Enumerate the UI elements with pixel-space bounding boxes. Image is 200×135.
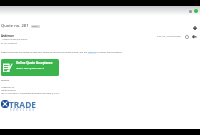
staticText: 3:49 AM (1 minute ago) [157, 35, 181, 38]
staticText: Quote no. 281 [1, 23, 29, 29]
button[interactable]: website [88, 51, 96, 54]
staticText: Tel: 0117 456 9876 // Northumbria Drive … [1, 92, 60, 95]
staticText: View & Sign Quote Here → [16, 67, 45, 70]
staticText: for terms and conditions. [96, 51, 123, 54]
button[interactable]: Reply [192, 34, 197, 39]
button[interactable]: Print [192, 25, 198, 31]
staticText: Trade Services [1, 89, 16, 92]
button[interactable]: Online [194, 9, 198, 13]
staticText: Anderson Uk [1, 86, 15, 89]
staticText: TRADE [9, 99, 36, 110]
staticText: to Mr Anderson [1, 42, 18, 45]
staticText: Online Quote Acceptance [16, 61, 53, 65]
button[interactable]: Inbox × [31, 25, 40, 28]
staticText: Anderson [1, 34, 14, 38]
button[interactable]: Status [189, 10, 192, 13]
staticText: S E R V I C E S [10, 108, 35, 112]
button[interactable]: Star [184, 34, 189, 39]
staticText: Please follow the link below to view you… [1, 51, 88, 54]
staticText: Regards, [1, 79, 11, 82]
button[interactable]: Online Quote Acceptance [1, 59, 59, 76]
staticText: Inbox × [32, 25, 39, 28]
staticText: <admin.anderson.mana> [2, 38, 28, 41]
